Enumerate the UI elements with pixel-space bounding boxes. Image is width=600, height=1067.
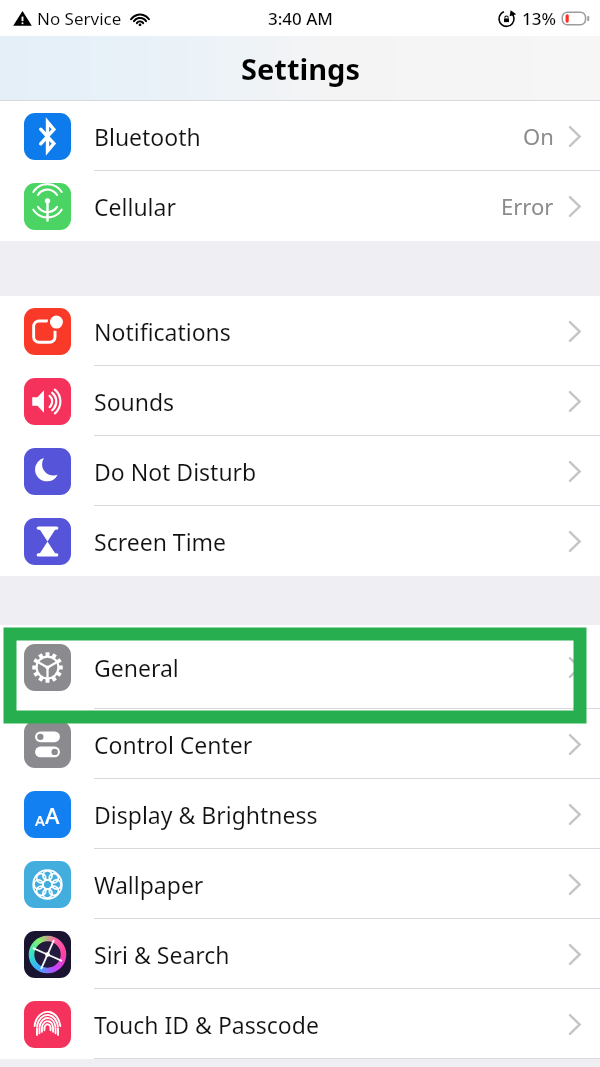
staticText: 3:40 AM bbox=[268, 7, 333, 30]
staticText: 13% bbox=[522, 7, 556, 30]
staticText: Screen Time bbox=[94, 526, 227, 557]
staticText: Bluetooth bbox=[94, 121, 201, 152]
staticText: Display & Brightness bbox=[94, 799, 318, 830]
button[interactable]: Control Center bbox=[0, 709, 600, 779]
button[interactable]: Wallpaper bbox=[0, 849, 600, 919]
button[interactable]: Bluetooth bbox=[0, 101, 600, 171]
staticText: No Service bbox=[37, 7, 122, 30]
staticText: Error bbox=[501, 191, 554, 221]
other: General highlighted bbox=[10, 634, 580, 717]
button[interactable]: Siri & Search bbox=[0, 919, 600, 989]
staticText: Cellular bbox=[94, 191, 176, 222]
button[interactable]: Sounds bbox=[0, 366, 600, 436]
staticText: Siri & Search bbox=[94, 939, 230, 970]
button[interactable]: Notifications bbox=[0, 296, 600, 366]
staticText: A bbox=[45, 800, 60, 830]
staticText: A bbox=[35, 810, 45, 830]
staticText: Touch ID & Passcode bbox=[94, 1009, 319, 1040]
button[interactable]: Do Not Disturb bbox=[0, 436, 600, 506]
staticText: Notifications bbox=[94, 316, 231, 347]
button[interactable]: General bbox=[0, 625, 600, 709]
staticText: General bbox=[94, 652, 179, 683]
button[interactable]: Cellular bbox=[0, 171, 600, 241]
button[interactable]: Touch ID & Passcode bbox=[0, 989, 600, 1059]
staticText: Sounds bbox=[94, 386, 175, 417]
button[interactable]: Screen Time bbox=[0, 506, 600, 576]
button[interactable]: A bbox=[0, 779, 600, 849]
staticText: Wallpaper bbox=[94, 869, 204, 900]
staticText: Settings bbox=[241, 49, 360, 88]
staticText: On bbox=[523, 121, 554, 151]
staticText: Do Not Disturb bbox=[94, 456, 257, 487]
staticText: Control Center bbox=[94, 729, 253, 760]
